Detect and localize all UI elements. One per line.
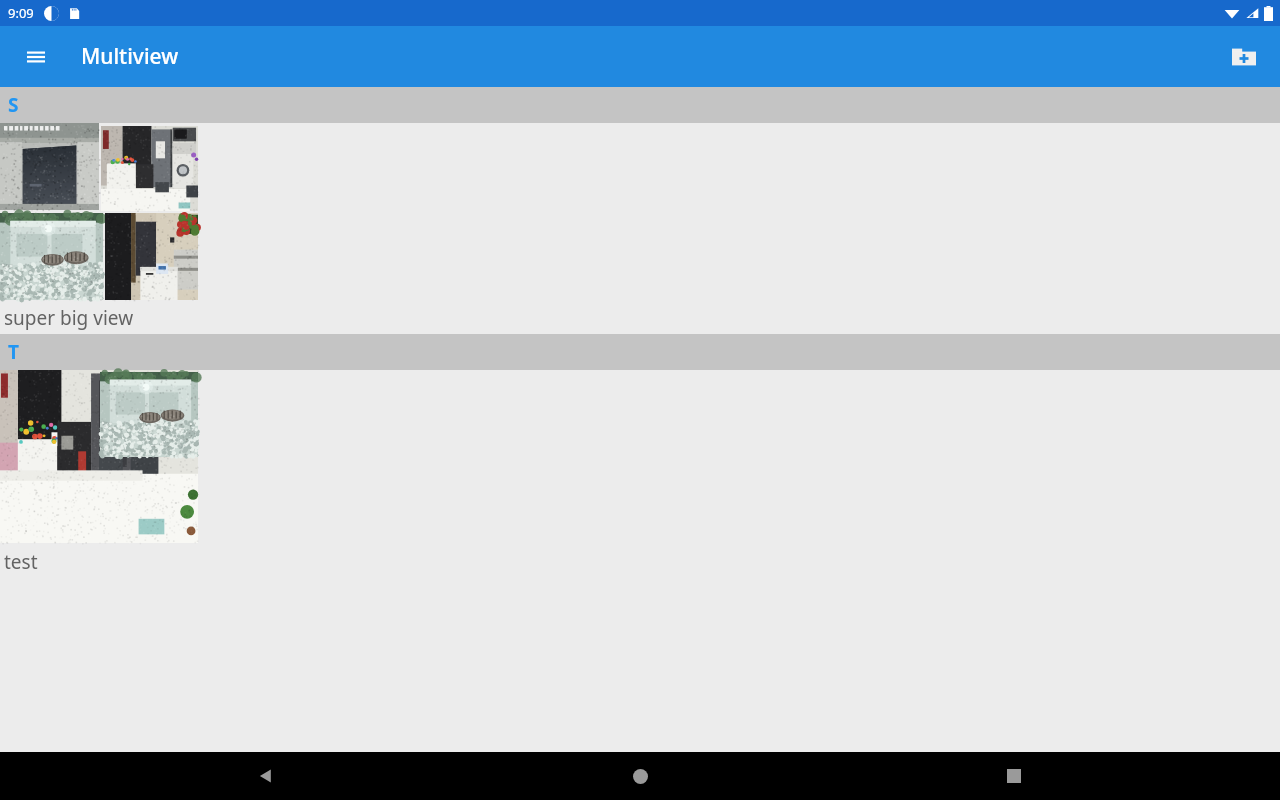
button[interactable] [0, 370, 1280, 546]
staticText: test [4, 549, 38, 575]
button[interactable]: Recent apps [990, 752, 1038, 800]
button[interactable]: Back [242, 752, 290, 800]
button[interactable]: T [0, 334, 1280, 370]
button[interactable]: S [0, 87, 1280, 123]
staticText: S [8, 92, 19, 118]
button[interactable]: Home [616, 752, 664, 800]
staticText: super big view [4, 305, 134, 331]
button[interactable]: super big view [0, 302, 1280, 334]
button[interactable]: Create new view [1222, 35, 1266, 79]
button[interactable]: test [0, 546, 1280, 578]
staticText: 9:09 [8, 4, 34, 22]
button[interactable]: Open navigation drawer [14, 35, 58, 79]
staticText: T [8, 339, 19, 365]
button[interactable] [0, 123, 1280, 302]
staticText: Multiview [81, 42, 179, 71]
